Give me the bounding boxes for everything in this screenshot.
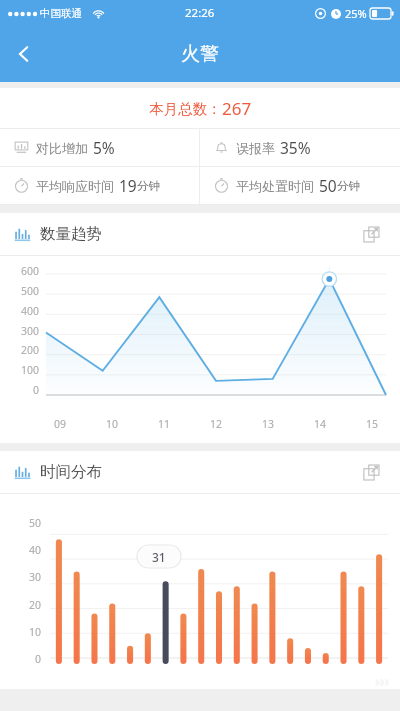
staticText: 200 [21,343,40,355]
staticText: 11 [158,417,171,431]
button[interactable]: 平均处置时间 [200,167,400,204]
button[interactable]: Open full screen [356,457,386,487]
staticText: ◗◗◗ [375,677,390,687]
staticText: 50 [319,175,337,196]
staticText: 19 [119,175,137,196]
staticText: 火警 [181,42,219,66]
staticText: 分钟 [137,179,160,193]
staticText: 5% [93,137,115,158]
button[interactable]: 误报率 [200,129,400,166]
staticText: 31 [152,549,166,565]
staticText: 误报率 [236,140,275,156]
staticText: 500 [21,284,40,296]
staticText: 15 [366,417,379,431]
staticText: 0 [33,383,40,395]
staticText: 平均响应时间 [36,178,114,194]
staticText: 09 [54,417,67,431]
button[interactable]: Back [0,30,48,78]
staticText: 平均处置时间 [236,178,314,194]
staticText: 400 [21,304,40,316]
staticText: 12 [210,417,223,431]
staticText: 25% [345,6,367,21]
staticText: 100 [21,363,40,375]
staticText: 40 [29,543,42,555]
button[interactable]: Open full screen [356,219,386,249]
staticText: 300 [21,324,40,336]
staticText: 10 [106,417,119,431]
staticText: 0 [35,652,42,664]
staticText: 267 [222,97,252,120]
staticText: 时间分布 [40,462,102,482]
staticText: 对比增加 [36,140,88,156]
staticText: 13 [262,417,275,431]
staticText: 22:26 [185,5,215,21]
staticText: 中国联通 [40,7,82,20]
staticText: 30 [29,570,42,582]
staticText: 20 [29,598,42,610]
staticText: 数量趋势 [40,224,102,244]
staticText: 本月总数： [149,100,222,118]
staticText: 50 [29,516,42,528]
staticText: 分钟 [337,179,360,193]
staticText: 600 [21,264,40,276]
staticText: 35% [280,137,311,158]
button[interactable]: 对比增加 [0,129,199,166]
staticText: 10 [29,625,42,637]
button[interactable]: 平均响应时间 [0,167,199,204]
staticText: 14 [314,417,327,431]
